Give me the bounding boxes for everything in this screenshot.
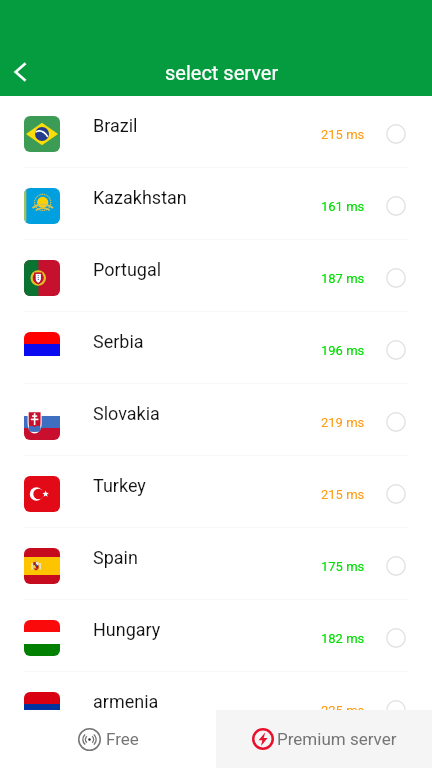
staticText: 175 ms	[321, 559, 365, 574]
staticText: Portugal	[93, 259, 162, 280]
staticText: armenia	[93, 691, 159, 712]
staticText: Premium server	[277, 729, 397, 749]
staticText: select server	[165, 61, 279, 84]
staticText: 215 ms	[321, 487, 365, 502]
staticText: Spain	[93, 547, 138, 568]
staticText: Turkey	[93, 475, 146, 496]
staticText: Kazakhstan	[93, 187, 187, 208]
staticText: 225 ms	[321, 703, 365, 718]
staticText: Slovakia	[93, 403, 160, 424]
staticText: Free	[106, 729, 139, 749]
button[interactable]: Slovakia	[0, 384, 432, 456]
button[interactable]: Turkey	[0, 456, 432, 528]
button[interactable]: Back	[0, 48, 44, 96]
staticText: Brazil	[93, 115, 138, 136]
staticText: 196 ms	[321, 343, 365, 358]
button[interactable]: Kazakhstan	[0, 168, 432, 240]
staticText: 182 ms	[321, 631, 365, 646]
button[interactable]: Free	[0, 710, 216, 768]
staticText: 187 ms	[321, 271, 365, 286]
staticText: 215 ms	[321, 127, 365, 142]
button[interactable]: Hungary	[0, 600, 432, 672]
button[interactable]: Spain	[0, 528, 432, 600]
button[interactable]: Serbia	[0, 312, 432, 384]
button[interactable]: Portugal	[0, 240, 432, 312]
staticText: 161 ms	[321, 199, 365, 214]
staticText: Serbia	[93, 331, 144, 352]
staticText: Hungary	[93, 619, 161, 640]
button[interactable]: Brazil	[0, 96, 432, 168]
button[interactable]: Premium server	[216, 710, 432, 768]
button[interactable]: armenia	[0, 672, 432, 744]
staticText: 219 ms	[321, 415, 365, 430]
